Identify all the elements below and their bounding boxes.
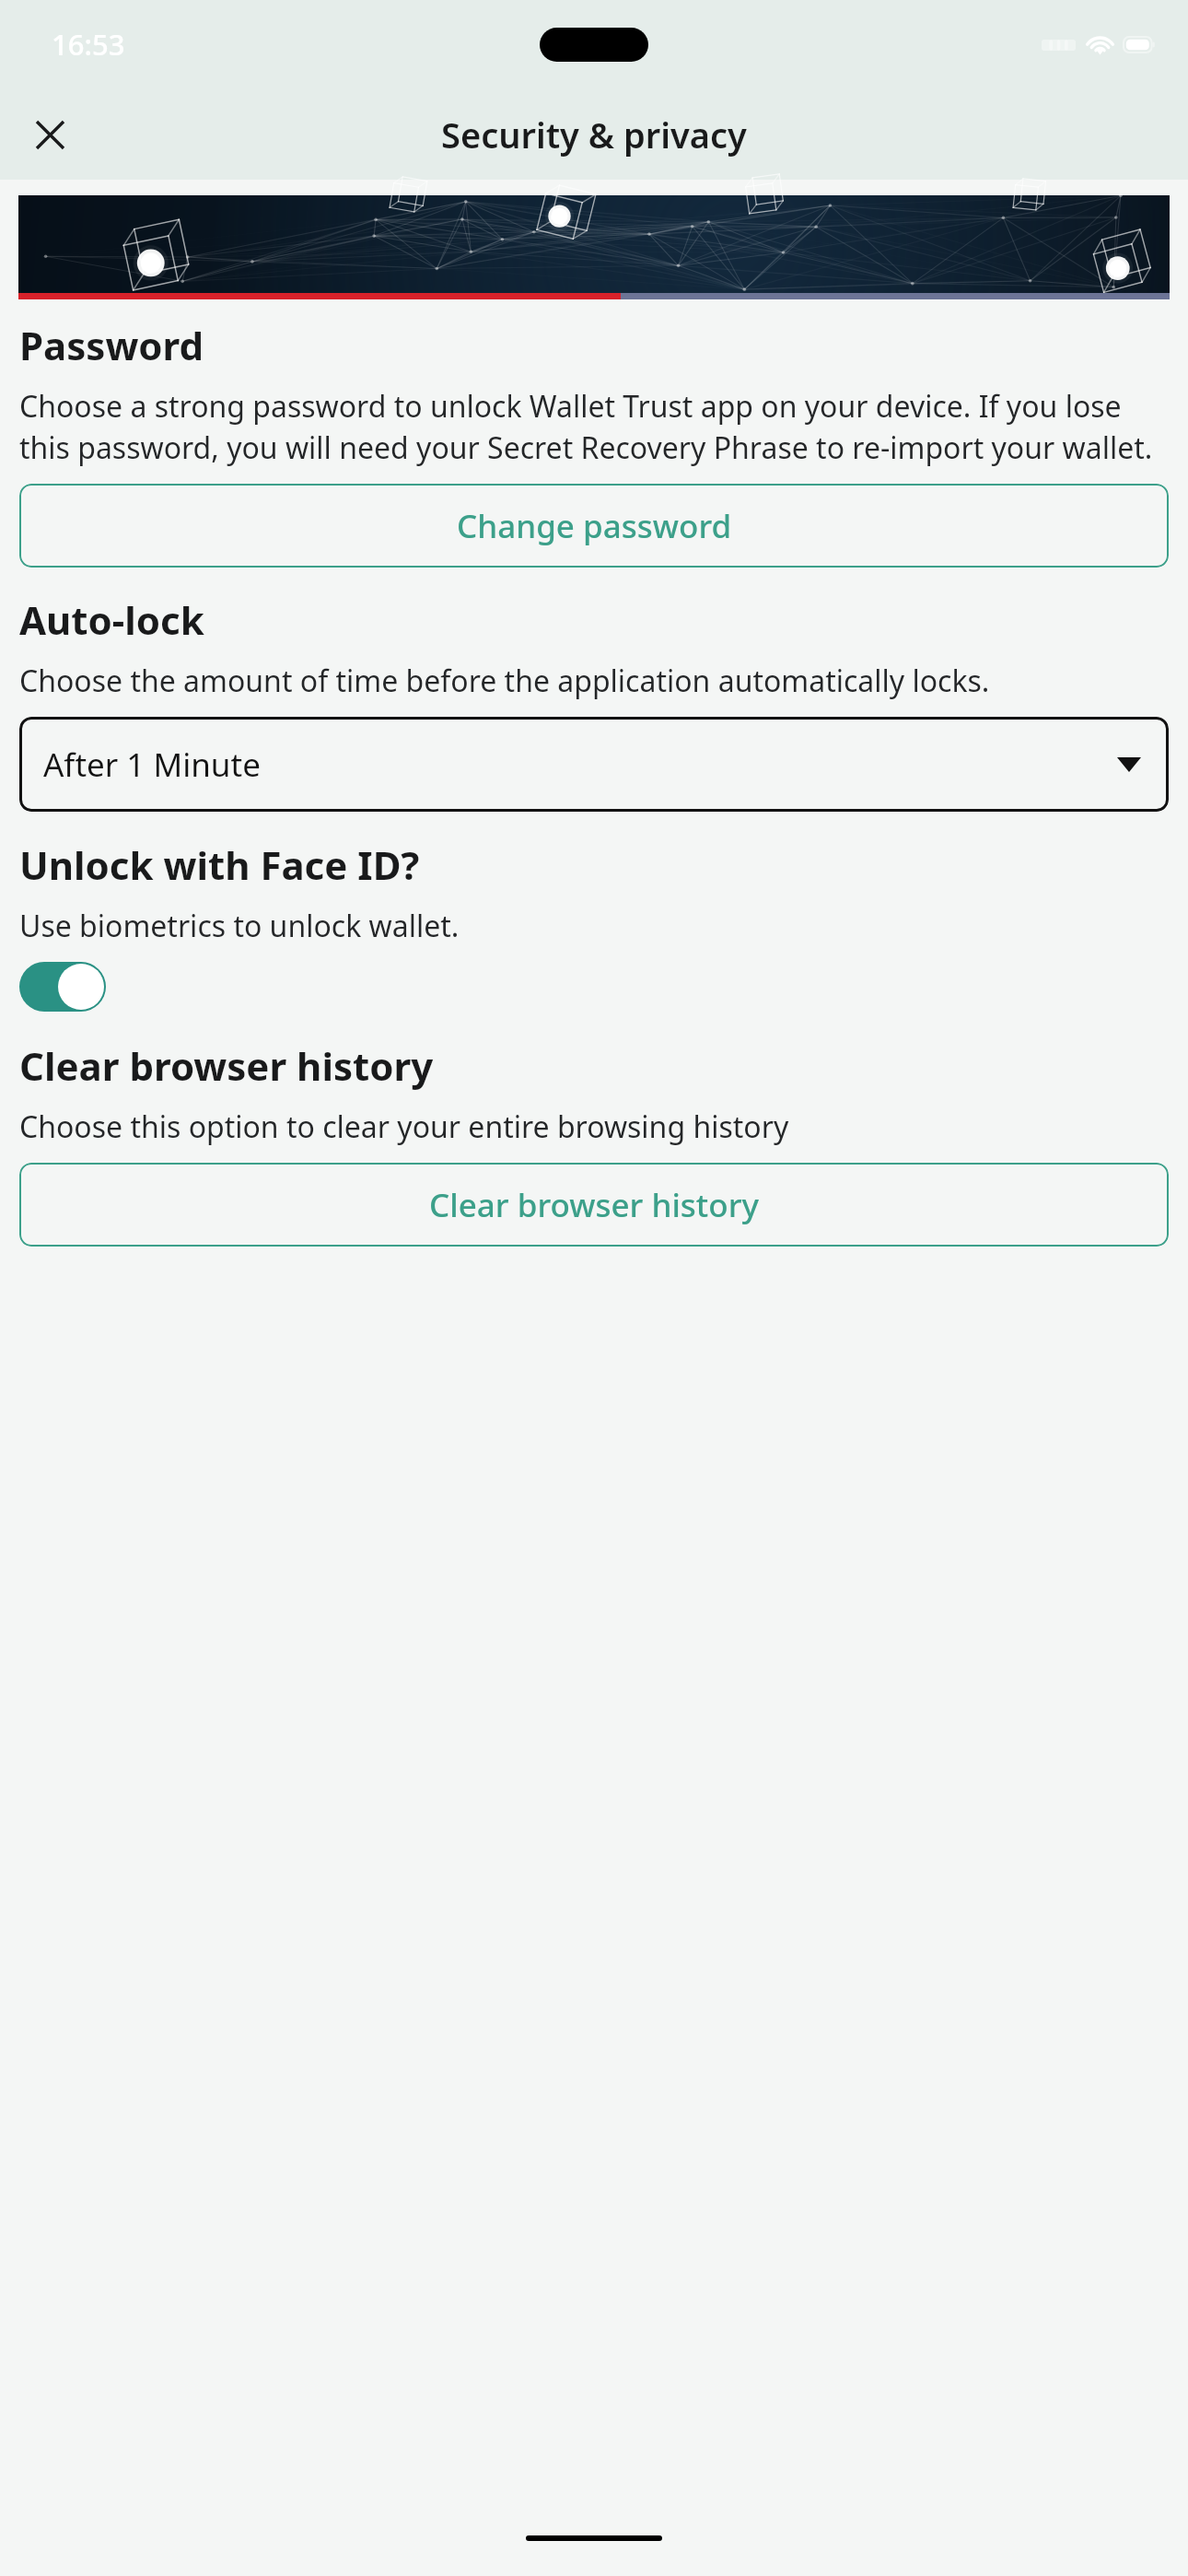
staticText: Choose a strong password to unlock Walle… <box>19 386 1169 468</box>
staticText: Clear browser history <box>429 1183 759 1227</box>
staticText: Choose the amount of time before the app… <box>19 661 990 701</box>
staticText: Unlock with Face ID? <box>19 838 420 891</box>
staticText: Password <box>19 319 204 371</box>
staticText: Use biometrics to unlock wallet. <box>19 906 460 946</box>
button[interactable]: Change password <box>19 484 1169 568</box>
staticText: After 1 Minute <box>43 743 261 787</box>
staticText: Change password <box>457 504 732 548</box>
button[interactable]: Close <box>20 105 79 164</box>
staticText: Security & privacy <box>441 111 747 158</box>
button[interactable]: Clear browser history <box>19 1163 1169 1247</box>
button[interactable]: After 1 Minute <box>19 717 1169 812</box>
staticText: Clear browser history <box>19 1039 434 1092</box>
staticText: 16:53 <box>52 25 125 64</box>
staticText: Choose this option to clear your entire … <box>19 1107 789 1147</box>
staticText: Auto-lock <box>19 593 204 646</box>
button[interactable]: Unlock with Face ID toggle, on <box>19 962 106 1012</box>
